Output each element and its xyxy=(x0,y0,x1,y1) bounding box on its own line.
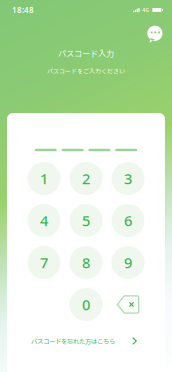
staticText: 9 xyxy=(124,253,132,272)
button[interactable]: 5 xyxy=(69,204,102,237)
button[interactable]: 8 xyxy=(69,246,102,279)
staticText: 4G xyxy=(142,6,149,14)
button[interactable]: 9 xyxy=(111,246,144,279)
staticText: 6 xyxy=(124,211,132,230)
staticText: 0 xyxy=(82,295,90,314)
button[interactable]: 4 xyxy=(27,204,60,237)
staticText: パスコードを忘れた方はこちら xyxy=(31,336,115,346)
button[interactable]: Delete xyxy=(111,288,144,321)
button[interactable]: 1 xyxy=(27,162,60,195)
staticText: 8 xyxy=(82,253,90,272)
button[interactable]: 0 xyxy=(69,288,102,321)
button[interactable]: 3 xyxy=(111,162,144,195)
button[interactable]: Support chat xyxy=(142,21,168,47)
staticText: パスコードをご入力ください xyxy=(47,67,125,75)
staticText: パスコード入力 xyxy=(58,47,114,59)
staticText: 2 xyxy=(82,169,90,188)
button[interactable]: 2 xyxy=(69,162,102,195)
staticText: 7 xyxy=(40,253,48,272)
button[interactable]: 7 xyxy=(27,246,60,279)
staticText: 1 xyxy=(40,169,48,188)
button[interactable]: 6 xyxy=(111,204,144,237)
staticText: 3 xyxy=(124,169,132,188)
staticText: 5 xyxy=(82,211,90,230)
staticText: 4 xyxy=(40,211,48,230)
button[interactable]: パスコードを忘れた方はこちら xyxy=(31,329,137,353)
staticText: 18:48 xyxy=(12,5,34,15)
